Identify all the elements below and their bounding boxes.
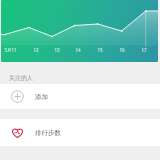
button[interactable]: 排行步数 [0, 119, 160, 146]
button[interactable]: 添加 [0, 84, 160, 109]
staticText: 14 [75, 47, 81, 53]
button[interactable]: 5月11 [1, 0, 158, 62]
staticText: 关注的人 [9, 74, 33, 82]
staticText: 17 [141, 47, 147, 53]
other: 添加 [11, 90, 24, 103]
staticText: 13 [54, 47, 60, 53]
staticText: 16 [119, 47, 125, 53]
staticText: 添加 [35, 93, 48, 101]
staticText: 5月11 [4, 47, 17, 53]
staticText: 排行步数 [35, 129, 61, 137]
staticText: 15 [97, 47, 103, 53]
other: 排行步数 [11, 126, 24, 139]
staticText: 12 [33, 47, 39, 53]
